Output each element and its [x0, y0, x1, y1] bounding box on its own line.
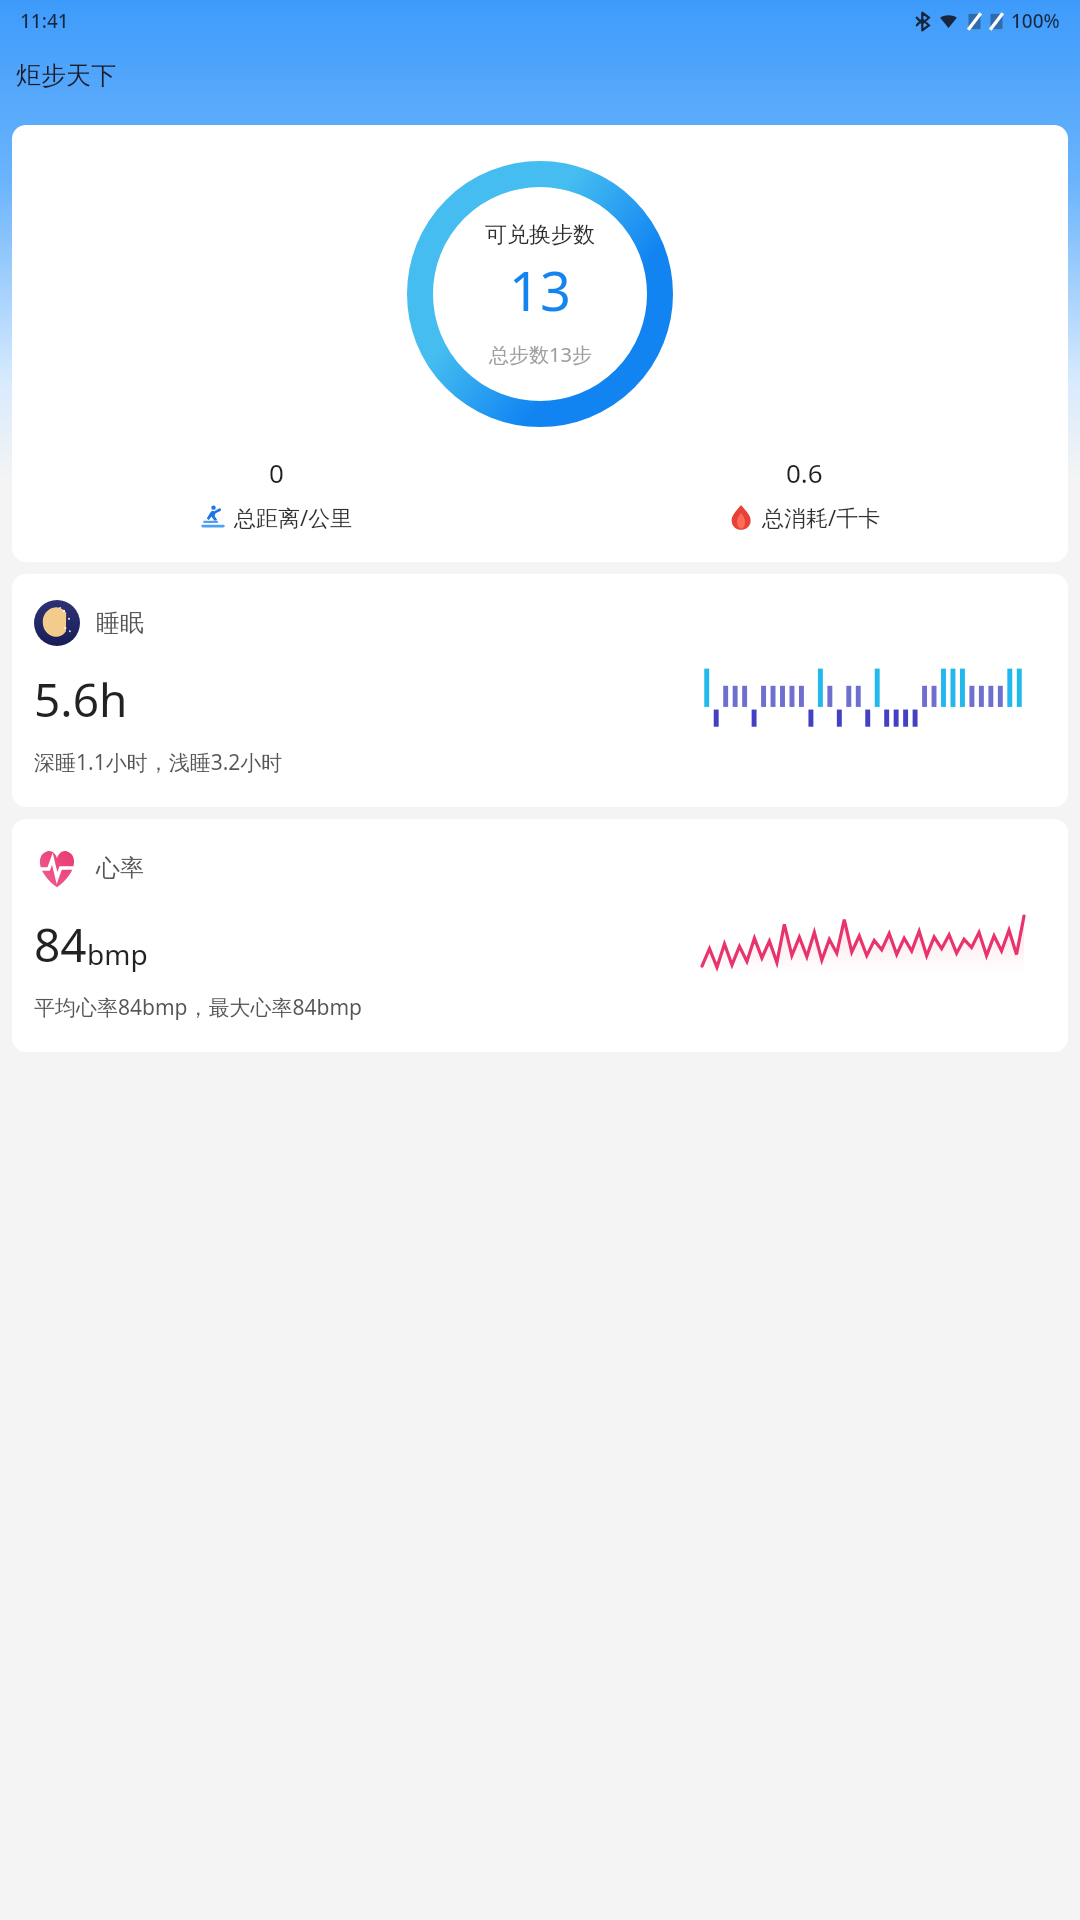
staticText: 可兑换步数	[485, 221, 595, 249]
staticText: 13	[509, 253, 571, 327]
staticText: 总消耗/千卡	[762, 502, 881, 532]
button[interactable]: 可兑换步数	[12, 125, 1068, 562]
button[interactable]: 0.6	[540, 455, 1068, 532]
staticText: 5.6h	[34, 668, 128, 731]
staticText: 深睡1.1小时，浅睡3.2小时	[34, 748, 283, 777]
staticText: 心率	[96, 853, 144, 883]
staticText: 84	[34, 913, 87, 976]
staticText: 0.6	[786, 455, 823, 490]
staticText: bmp	[87, 935, 148, 973]
staticText: 11:41	[20, 8, 69, 34]
staticText: 睡眠	[96, 608, 144, 638]
staticText: 0	[269, 455, 284, 490]
staticText: 总步数13步	[489, 341, 592, 368]
button[interactable]: 心率	[12, 819, 1068, 1052]
staticText: 总距离/公里	[234, 502, 353, 532]
button[interactable]: 0	[12, 455, 540, 532]
staticText: 炬步天下	[16, 60, 116, 91]
staticText: 平均心率84bmp，最大心率84bmp	[34, 993, 362, 1022]
staticText: 100%	[1011, 8, 1060, 34]
button[interactable]: 睡眠	[12, 574, 1068, 807]
